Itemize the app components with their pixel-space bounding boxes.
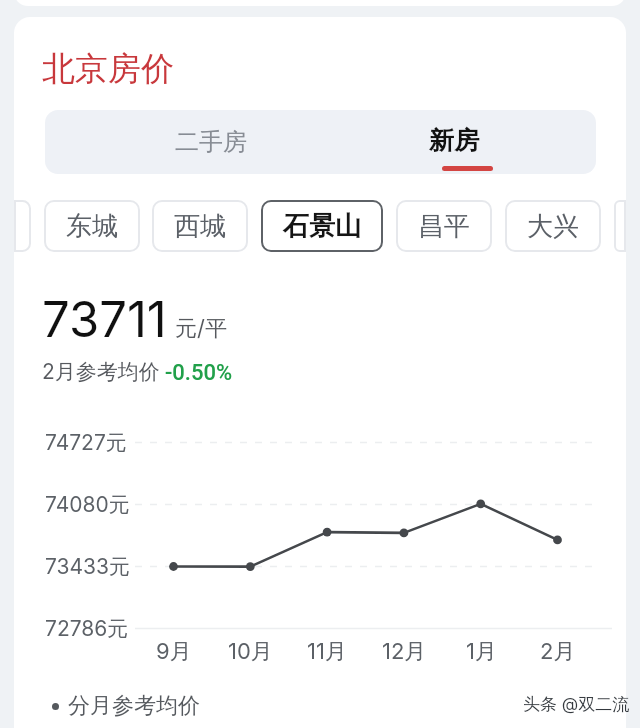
- staticText: 74080元: [45, 492, 130, 519]
- staticText: 东城: [66, 210, 118, 243]
- staticText: 1月: [466, 638, 497, 666]
- staticText: 72786元: [45, 616, 129, 643]
- button[interactable]: 二手房: [45, 110, 345, 174]
- staticText: 74727元: [45, 430, 127, 457]
- staticText: -0.50%: [165, 360, 233, 386]
- staticText: 9月: [156, 638, 192, 666]
- staticText: 新房: [429, 125, 479, 156]
- staticText: 73711: [42, 290, 167, 349]
- staticText: 10月: [228, 638, 273, 666]
- staticText: 12月: [382, 638, 427, 666]
- staticText: 头条 @双二流: [523, 694, 630, 716]
- staticText: 元/平: [175, 315, 227, 343]
- staticText: 昌平: [418, 210, 470, 243]
- button[interactable]: 新房: [345, 110, 596, 174]
- staticText: 石景山: [283, 210, 361, 243]
- button[interactable]: 大兴: [505, 200, 601, 252]
- staticText: 73433元: [45, 554, 131, 581]
- staticText: 西城: [174, 210, 226, 243]
- button[interactable]: 昌平: [396, 200, 492, 252]
- button[interactable]: 石景山: [261, 200, 383, 252]
- staticText: 2月: [540, 638, 576, 666]
- staticText: 二手房: [175, 127, 247, 157]
- button[interactable]: 西城: [152, 200, 248, 252]
- staticText: 分月参考均价: [68, 692, 200, 720]
- button[interactable]: 东城: [44, 200, 140, 252]
- staticText: 2月参考均价: [42, 359, 160, 386]
- staticText: 北京房价: [42, 48, 174, 90]
- staticText: 大兴: [527, 210, 579, 243]
- staticText: 11月: [307, 638, 347, 666]
